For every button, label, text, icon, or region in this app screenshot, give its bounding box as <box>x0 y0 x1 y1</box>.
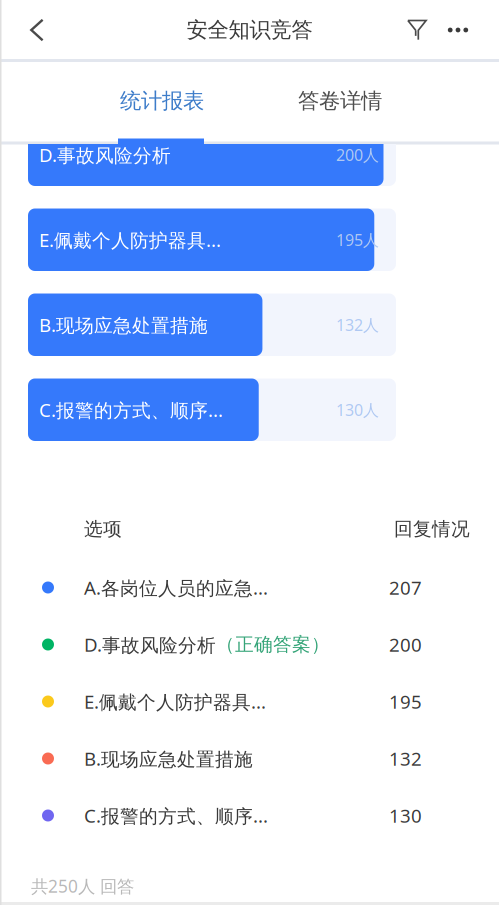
staticText: A.各岗位人员的应急... <box>84 575 268 600</box>
staticText: C.报警的方式、顺序... <box>39 397 223 422</box>
staticText: D.事故风险分析 <box>39 142 171 167</box>
staticText: 132人 <box>336 314 379 335</box>
staticText: 195 <box>389 689 422 714</box>
staticText: 共250人 回答 <box>31 874 134 897</box>
button[interactable]: C.报警的方式、顺序... <box>0 787 499 844</box>
staticText: 195人 <box>336 229 379 250</box>
button[interactable]: A.各岗位人员的应急... <box>0 559 499 616</box>
staticText: 130人 <box>336 399 379 420</box>
button[interactable]: Filter <box>394 0 440 60</box>
staticText: E.佩戴个人防护器具... <box>39 227 221 252</box>
staticText: C.报警的方式、顺序... <box>84 803 268 828</box>
staticText: 选项 <box>84 517 122 540</box>
button[interactable]: E.佩戴个人防护器具... <box>0 673 499 730</box>
button[interactable]: 答卷详情 <box>251 62 429 140</box>
button[interactable]: More <box>435 0 481 60</box>
staticText: B.现场应急处置措施 <box>39 312 208 337</box>
staticText: D.事故风险分析 <box>84 632 216 657</box>
staticText: 200 <box>389 632 422 657</box>
staticText: 130 <box>389 803 422 828</box>
staticText: 答卷详情 <box>298 88 382 114</box>
button[interactable]: 统计报表 <box>73 62 251 140</box>
staticText: B.现场应急处置措施 <box>84 746 253 771</box>
staticText: 132 <box>389 746 422 771</box>
staticText: 安全知识竞答 <box>186 17 312 43</box>
button[interactable]: B.现场应急处置措施 <box>0 730 499 787</box>
staticText: 统计报表 <box>120 88 204 114</box>
button[interactable]: D.事故风险分析 <box>0 616 499 673</box>
staticText: 200人 <box>336 144 379 165</box>
staticText: E.佩戴个人防护器具... <box>84 689 266 714</box>
staticText: 回复情况 <box>394 517 470 540</box>
button[interactable]: Back <box>11 0 63 60</box>
staticText: （正确答案） <box>216 633 330 656</box>
staticText: 207 <box>389 575 422 600</box>
